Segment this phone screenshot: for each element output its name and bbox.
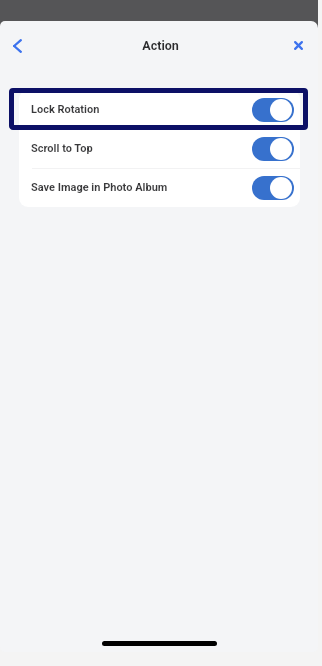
button[interactable]: Back — [1, 30, 33, 62]
button[interactable]: Scroll to Top — [19, 129, 300, 168]
staticText: Save Image in Photo Album — [31, 181, 168, 194]
button[interactable]: Toggle — [252, 98, 294, 122]
button[interactable]: Lock Rotation — [19, 90, 300, 129]
button[interactable]: Save Image in Photo Album — [19, 168, 300, 207]
button[interactable]: Toggle — [252, 137, 294, 161]
staticText: Action — [142, 38, 179, 53]
staticText: Lock Rotation — [31, 103, 100, 116]
button[interactable]: Close — [282, 29, 314, 61]
staticText: Scroll to Top — [31, 142, 93, 155]
button[interactable]: Toggle — [252, 176, 294, 200]
